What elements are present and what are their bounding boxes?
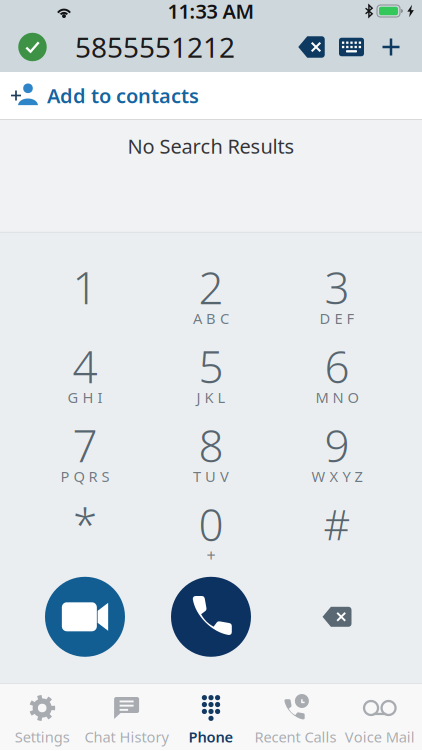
- staticText: #: [323, 497, 350, 552]
- button[interactable]: #: [274, 492, 400, 571]
- button[interactable]: 6: [274, 334, 400, 413]
- staticText: 6: [324, 337, 349, 395]
- button[interactable]: Video call: [22, 571, 148, 663]
- staticText: 4: [72, 337, 97, 395]
- staticText: TUV: [193, 467, 229, 486]
- button[interactable]: Delete: [292, 22, 331, 72]
- staticText: No Search Results: [127, 133, 294, 159]
- staticText: 11:33 AM: [167, 0, 254, 24]
- button[interactable]: Verified number: [0, 22, 56, 72]
- staticText: 8: [198, 416, 223, 474]
- staticText: Chat History: [85, 727, 169, 746]
- staticText: Phone: [188, 727, 233, 746]
- button[interactable]: Backspace: [274, 571, 400, 663]
- staticText: Recent Calls: [254, 727, 336, 746]
- button[interactable]: *: [22, 492, 148, 571]
- button[interactable]: 5: [148, 334, 274, 413]
- button[interactable]: 2: [148, 255, 274, 334]
- button[interactable]: 4: [22, 334, 148, 413]
- button[interactable]: 7: [22, 413, 148, 492]
- staticText: 5855551212: [75, 28, 235, 66]
- staticText: Voice Mail: [345, 727, 415, 746]
- staticText: DEF: [319, 309, 354, 328]
- staticText: 1: [72, 258, 97, 316]
- button[interactable]: Add number: [372, 22, 410, 72]
- staticText: +: [206, 545, 215, 566]
- button[interactable]: Hide keypad: [331, 22, 372, 72]
- button[interactable]: Chat History: [84, 684, 169, 750]
- staticText: ABC: [193, 309, 229, 328]
- button[interactable]: 1: [22, 255, 148, 334]
- staticText: 2: [198, 258, 223, 316]
- staticText: 3: [324, 258, 349, 316]
- staticText: JKL: [196, 388, 225, 407]
- button[interactable]: Voice Mail: [338, 684, 422, 750]
- button[interactable]: Recent Calls: [253, 684, 338, 750]
- staticText: Settings: [15, 727, 70, 746]
- staticText: GHI: [67, 388, 102, 407]
- staticText: 9: [324, 416, 349, 474]
- button[interactable]: 9: [274, 413, 400, 492]
- button[interactable]: 0: [148, 492, 274, 571]
- button[interactable]: 8: [148, 413, 274, 492]
- staticText: 5: [198, 337, 223, 395]
- button[interactable]: Settings: [0, 684, 84, 750]
- staticText: *: [73, 495, 97, 553]
- button[interactable]: 3: [274, 255, 400, 334]
- staticText: Add to contacts: [47, 82, 199, 109]
- staticText: WXYZ: [311, 467, 362, 486]
- staticText: PQRS: [60, 467, 109, 486]
- staticText: MNO: [315, 388, 358, 407]
- staticText: 7: [72, 416, 97, 474]
- button[interactable]: Phone: [169, 684, 253, 750]
- button[interactable]: Call: [148, 571, 274, 663]
- staticText: 0: [198, 495, 223, 553]
- button[interactable]: Add to contacts: [0, 72, 422, 119]
